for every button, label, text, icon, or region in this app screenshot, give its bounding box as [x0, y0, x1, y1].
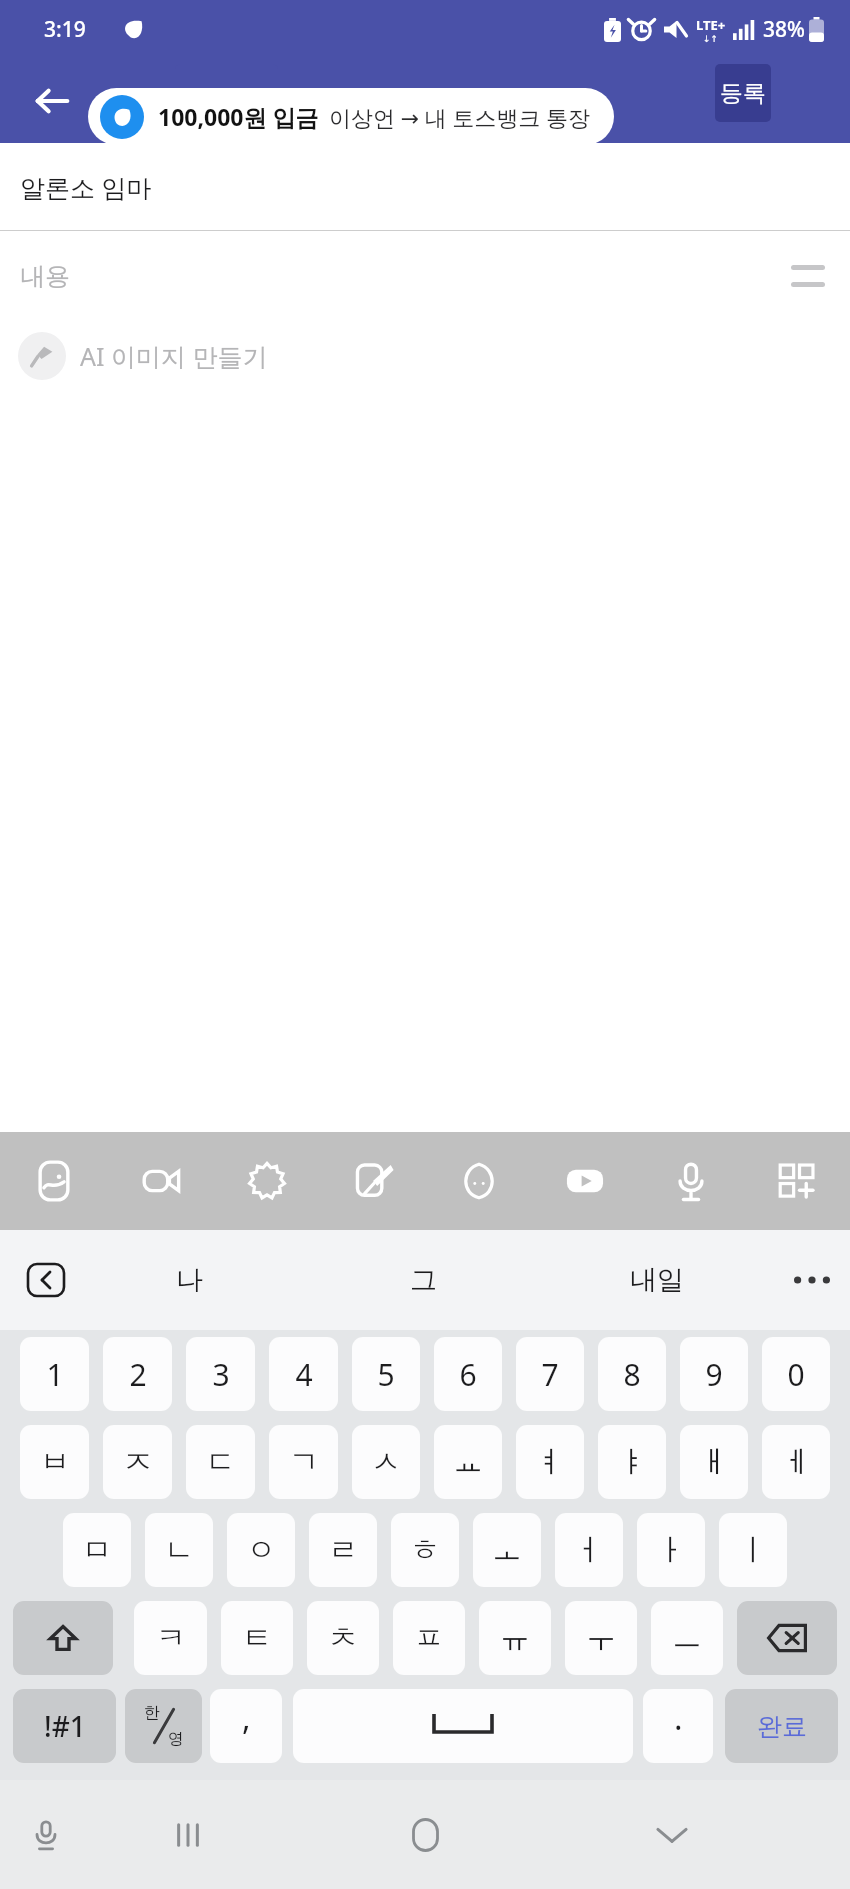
staticText: ㅏ — [656, 1531, 686, 1569]
button[interactable]: ㅁ — [63, 1513, 131, 1587]
staticText: 내일 — [630, 1263, 684, 1297]
staticText: ㅐ — [699, 1443, 729, 1481]
button[interactable]: ㅇ — [227, 1513, 295, 1587]
button[interactable]: ㅓ — [555, 1513, 623, 1587]
staticText: 1 — [46, 1354, 64, 1395]
button[interactable]: 6 — [434, 1337, 502, 1411]
button[interactable]: , — [210, 1689, 282, 1763]
button[interactable]: GIF — [214, 1132, 320, 1230]
staticText: ㅂ — [40, 1443, 70, 1481]
button[interactable]: 5 — [352, 1337, 420, 1411]
button[interactable]: 3 — [186, 1337, 255, 1411]
button[interactable]: Hide keyboard — [642, 1805, 702, 1865]
staticText: ㅋ — [156, 1619, 186, 1657]
button[interactable]: ㅑ — [598, 1425, 666, 1499]
button[interactable]: 0 — [762, 1337, 830, 1411]
button[interactable]: 내일 — [540, 1230, 774, 1330]
staticText: ㅌ — [242, 1619, 272, 1657]
button[interactable]: ㄷ — [186, 1425, 255, 1499]
staticText: 9 — [705, 1354, 723, 1395]
button[interactable]: Shift — [13, 1601, 113, 1675]
button[interactable]: ㅣ — [719, 1513, 787, 1587]
button[interactable]: !#1 — [13, 1689, 116, 1763]
button[interactable]: Previous — [20, 1256, 72, 1304]
button[interactable]: ㅐ — [680, 1425, 748, 1499]
button[interactable]: ㅋ — [134, 1601, 207, 1675]
button[interactable]: Home — [394, 1804, 456, 1866]
staticText: ㅗ — [492, 1531, 522, 1569]
staticText: . — [674, 1696, 683, 1740]
button[interactable]: ㅠ — [479, 1601, 551, 1675]
staticText: 2 — [129, 1354, 147, 1395]
button[interactable]: 등록 — [715, 64, 771, 122]
button[interactable]: 100,000원 입금 — [88, 88, 614, 145]
button[interactable]: Recent apps — [158, 1805, 218, 1865]
staticText: ㄷ — [206, 1443, 236, 1481]
button[interactable]: AI drawing — [320, 1132, 426, 1230]
button[interactable]: Text options — [780, 248, 836, 304]
staticText: 알론소 임마 — [20, 170, 152, 204]
staticText: 4 — [295, 1354, 313, 1395]
staticText: 이상언 → 내 토스뱅크 통장 — [329, 102, 591, 132]
staticText: ㅍ — [414, 1619, 444, 1657]
button[interactable]: ㅕ — [516, 1425, 584, 1499]
button[interactable]: More suggestions — [774, 1230, 850, 1330]
button[interactable]: ㅎ — [391, 1513, 459, 1587]
button[interactable]: ㅜ — [565, 1601, 637, 1675]
button[interactable]: Video — [107, 1132, 214, 1230]
button[interactable]: ㅅ — [352, 1425, 420, 1499]
button[interactable]: AI 이미지 만들기 — [0, 321, 850, 391]
button[interactable]: 4 — [269, 1337, 338, 1411]
button[interactable] — [175, 64, 278, 122]
button[interactable]: Language — [125, 1689, 202, 1763]
button[interactable]: 1 — [20, 1337, 89, 1411]
staticText: 5 — [377, 1354, 395, 1395]
button[interactable]: 9 — [680, 1337, 748, 1411]
staticText: ㅛ — [453, 1443, 483, 1481]
button[interactable]: Space — [293, 1689, 633, 1763]
staticText: ㅓ — [574, 1531, 604, 1569]
staticText: ㅔ — [781, 1443, 811, 1481]
button[interactable]: ㅍ — [393, 1601, 465, 1675]
button[interactable]: Sticker — [426, 1132, 532, 1230]
staticText: 0 — [787, 1354, 805, 1395]
button[interactable]: ㅂ — [20, 1425, 89, 1499]
button[interactable]: 나 — [72, 1230, 306, 1330]
button[interactable]: ㅗ — [473, 1513, 541, 1587]
staticText: 나 — [176, 1263, 203, 1297]
button[interactable]: ㅏ — [637, 1513, 705, 1587]
staticText: 그 — [410, 1263, 437, 1297]
staticText: ㅣ — [738, 1531, 768, 1569]
button[interactable]: 7 — [516, 1337, 584, 1411]
button[interactable]: ㅌ — [221, 1601, 293, 1675]
staticText: ㅠ — [500, 1619, 530, 1657]
staticText: !#1 — [44, 1707, 86, 1745]
button[interactable]: 완료 — [725, 1689, 838, 1763]
staticText: 7 — [541, 1354, 559, 1395]
button[interactable]: ㄱ — [269, 1425, 338, 1499]
button[interactable]: Back — [22, 71, 82, 131]
button[interactable]: 8 — [598, 1337, 666, 1411]
button[interactable]: Backspace — [737, 1601, 837, 1675]
button[interactable]: More — [744, 1132, 850, 1230]
button[interactable]: 그 — [306, 1230, 540, 1330]
button[interactable]: Voice input — [18, 1807, 74, 1863]
button[interactable]: ㅡ — [651, 1601, 723, 1675]
button[interactable]: Voice — [638, 1132, 744, 1230]
button[interactable]: ㄹ — [309, 1513, 377, 1587]
staticText: ㅕ — [535, 1443, 565, 1481]
staticText: LTE+ — [696, 16, 726, 34]
button[interactable]: ㅈ — [103, 1425, 172, 1499]
button[interactable]: ㅊ — [307, 1601, 379, 1675]
staticText: 영 — [168, 1729, 184, 1749]
staticText: 3:19 — [44, 15, 86, 44]
button[interactable]: Image — [0, 1132, 107, 1230]
button[interactable]: 2 — [103, 1337, 172, 1411]
staticText: 등록 — [720, 79, 766, 108]
button[interactable]: ㅛ — [434, 1425, 502, 1499]
button[interactable]: YouTube — [532, 1132, 638, 1230]
button[interactable]: ㅔ — [762, 1425, 830, 1499]
staticText: ㅈ — [123, 1443, 153, 1481]
button[interactable]: ㄴ — [145, 1513, 213, 1587]
button[interactable]: . — [643, 1689, 713, 1763]
